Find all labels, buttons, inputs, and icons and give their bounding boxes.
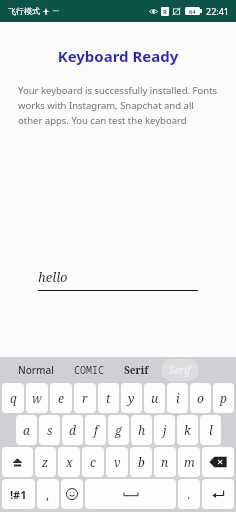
button[interactable]: Emoji (61, 479, 83, 509)
staticText: COMIC (74, 363, 104, 377)
button[interactable]: c (82, 447, 104, 477)
staticText: Your keyboard is successfully installed.… (18, 84, 218, 127)
staticText: s (47, 422, 53, 438)
button[interactable]: Serif (116, 359, 157, 381)
staticText: w (32, 390, 42, 406)
button[interactable]: p (213, 383, 234, 413)
staticText: 22:41 (206, 5, 230, 17)
staticText: b (138, 454, 145, 470)
button[interactable]: t (98, 383, 119, 413)
staticText: g (115, 422, 122, 438)
button[interactable]: h (131, 415, 152, 445)
staticText: y (128, 390, 135, 406)
button[interactable]: f (85, 415, 106, 445)
staticText: k (184, 422, 191, 438)
staticText: . (187, 486, 191, 502)
button[interactable]: Enter (202, 479, 234, 509)
staticText: m (184, 454, 195, 470)
button[interactable]: b (130, 447, 152, 477)
staticText: a (23, 422, 30, 438)
staticText: j (163, 422, 167, 438)
button[interactable]: Backspace (202, 447, 234, 477)
staticText: hello (38, 268, 68, 286)
staticText: , (46, 486, 50, 502)
button[interactable]: Space (85, 479, 176, 509)
button[interactable]: . (178, 479, 200, 509)
button[interactable]: Serif (161, 359, 199, 381)
staticText: f (94, 422, 98, 438)
staticText: 64 (189, 8, 196, 15)
button[interactable]: u (144, 383, 165, 413)
button[interactable]: k (177, 415, 198, 445)
button[interactable]: , (37, 479, 59, 509)
button[interactable]: e (50, 383, 72, 413)
button[interactable]: s (39, 415, 60, 445)
staticText: z (42, 454, 49, 470)
button[interactable]: a (16, 415, 37, 445)
staticText: !#1 (10, 487, 27, 502)
staticText: n (161, 454, 169, 470)
staticText: l (209, 422, 213, 438)
button[interactable]: q (2, 383, 24, 413)
staticText: Serif (124, 363, 149, 377)
button[interactable]: y (121, 383, 142, 413)
staticText: R (163, 8, 167, 16)
button[interactable]: n (154, 447, 176, 477)
button[interactable]: d (62, 415, 83, 445)
button[interactable]: m (178, 447, 200, 477)
button[interactable]: !#1 (2, 479, 35, 509)
staticText: o (197, 390, 204, 406)
button[interactable]: Shift (2, 447, 33, 477)
staticText: Normal (18, 363, 54, 377)
staticText: q (10, 390, 17, 406)
button[interactable]: j (154, 415, 175, 445)
button[interactable]: z (35, 447, 56, 477)
button[interactable]: w (26, 383, 48, 413)
staticText: Serif (169, 363, 191, 377)
button[interactable]: o (190, 383, 211, 413)
button[interactable]: Normal (10, 359, 62, 381)
staticText: 飞行模式 (8, 6, 40, 16)
button[interactable]: v (106, 447, 128, 477)
staticText: i (176, 390, 180, 406)
button[interactable]: l (200, 415, 221, 445)
staticText: x (66, 454, 73, 470)
staticText: c (90, 454, 96, 470)
staticText: h (138, 422, 146, 438)
button[interactable]: i (167, 383, 188, 413)
button[interactable]: COMIC (66, 359, 112, 381)
staticText: d (69, 422, 76, 438)
staticText: t (106, 390, 111, 406)
staticText: r (82, 390, 88, 406)
staticText: u (151, 390, 159, 406)
button[interactable]: g (108, 415, 129, 445)
staticText: v (114, 454, 121, 470)
staticText: Keyboard Ready (0, 46, 236, 66)
staticText: e (58, 390, 64, 406)
button[interactable]: x (58, 447, 80, 477)
button[interactable]: r (74, 383, 96, 413)
staticText: p (220, 390, 227, 406)
